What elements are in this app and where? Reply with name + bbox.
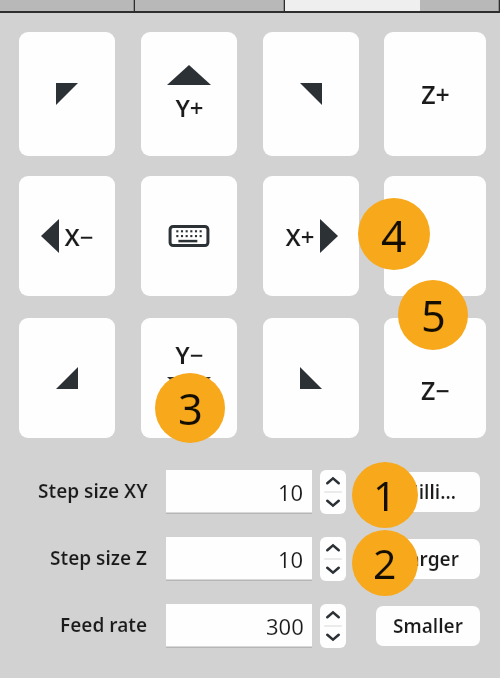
- staticText: 300: [266, 611, 304, 641]
- staticText: Y+: [175, 91, 204, 124]
- button[interactable]: Tab: [285, 0, 420, 12]
- button[interactable]: Jog up-left: [19, 32, 115, 156]
- staticText: Z−: [421, 373, 450, 407]
- button[interactable]: Tab: [0, 0, 135, 12]
- staticText: 10: [278, 477, 304, 507]
- staticText: 5: [421, 286, 446, 345]
- staticText: X−: [64, 220, 94, 253]
- staticText: Y−: [175, 338, 204, 371]
- staticText: Smaller: [393, 613, 463, 639]
- staticText: Larger: [398, 546, 459, 572]
- button[interactable]: Y plus: [141, 32, 237, 156]
- staticText: Milli…: [401, 479, 456, 505]
- button[interactable]: Value field: [166, 470, 312, 514]
- button[interactable]: Jog up-right: [263, 32, 359, 156]
- button[interactable]: Increase or decrease value: [320, 604, 346, 648]
- staticText: 10: [278, 544, 304, 574]
- button[interactable]: Larger: [376, 539, 480, 579]
- button[interactable]: X minus: [19, 176, 115, 296]
- button[interactable]: Value field: [166, 537, 312, 581]
- button[interactable]: Z plus: [384, 32, 486, 156]
- button[interactable]: Milli…: [376, 472, 480, 512]
- staticText: Step size XY: [38, 478, 148, 504]
- staticText: 4: [381, 204, 407, 265]
- button[interactable]: Jog down-right: [263, 318, 359, 438]
- button[interactable]: Increase or decrease value: [320, 537, 346, 581]
- staticText: Z+: [421, 77, 450, 111]
- button[interactable]: Keyboard: [141, 176, 237, 296]
- button[interactable]: X plus: [263, 176, 359, 296]
- button[interactable]: Y minus: [141, 318, 237, 438]
- staticText: 3: [178, 379, 203, 438]
- button[interactable]: Tab: [135, 0, 285, 12]
- button[interactable]: Z minus: [384, 318, 486, 438]
- staticText: 1: [373, 467, 397, 523]
- staticText: X+: [285, 220, 315, 253]
- button[interactable]: Value field: [166, 604, 312, 648]
- button[interactable]: Increase or decrease value: [320, 470, 346, 514]
- button[interactable]: Tab: [420, 0, 500, 12]
- staticText: Feed rate: [60, 612, 148, 638]
- button[interactable]: Home: [384, 176, 486, 296]
- staticText: Step size Z: [50, 545, 148, 571]
- button[interactable]: Jog down-left: [19, 318, 115, 438]
- button[interactable]: Smaller: [376, 606, 480, 646]
- staticText: 2: [373, 535, 397, 591]
